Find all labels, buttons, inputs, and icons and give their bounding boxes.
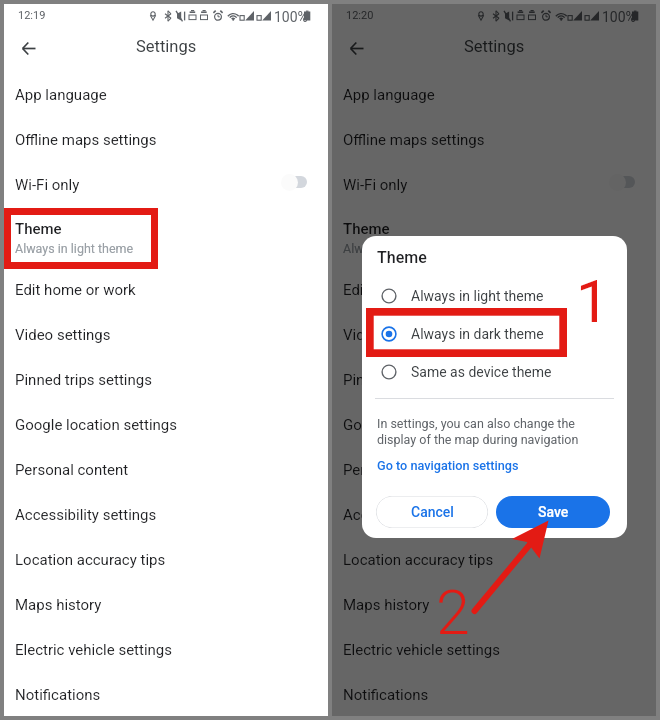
button[interactable]: Location accuracy tips [4, 537, 328, 582]
staticText: Theme [15, 220, 62, 238]
staticText: App language [343, 86, 435, 104]
staticText: Notifications [343, 686, 429, 704]
button[interactable]: Electric vehicle settings [332, 627, 656, 672]
staticText: Save [538, 504, 569, 520]
staticText: Offline maps settings [343, 131, 485, 149]
staticText: Always in light theme [343, 241, 462, 256]
button[interactable]: Notifications [4, 672, 328, 717]
staticText: Electric vehicle settings [343, 641, 501, 659]
button[interactable]: Always in light theme [362, 277, 627, 315]
staticText: Wi-Fi only [343, 176, 408, 194]
button[interactable]: App language [332, 72, 656, 117]
button[interactable]: Location accuracy tips [332, 537, 656, 582]
button[interactable]: Back [344, 35, 370, 61]
button[interactable]: Go to navigation settings [377, 458, 519, 473]
button[interactable]: Always in dark theme [362, 315, 627, 353]
button[interactable]: Back [16, 35, 42, 61]
staticText: Always in light theme [411, 288, 544, 304]
staticText: Pinned trips settings [15, 371, 152, 389]
button[interactable]: Maps history [4, 582, 328, 627]
staticText: Offline maps settings [15, 131, 157, 149]
button[interactable]: Theme [332, 207, 656, 267]
button[interactable]: Offline maps settings [332, 117, 656, 162]
staticText: Theme [343, 220, 390, 238]
button[interactable]: App language [4, 72, 328, 117]
button[interactable]: Accessibility settings [332, 492, 656, 537]
staticText: Accessibility settings [15, 506, 157, 524]
staticText: Always in light theme [15, 241, 134, 256]
button[interactable]: Video settings [4, 312, 328, 357]
staticText: Pinned trips settings [343, 371, 480, 389]
staticText: Edit home or work [15, 281, 136, 299]
staticText: 2 [436, 577, 470, 648]
button[interactable]: Offline maps settings [4, 117, 328, 162]
staticText: In settings, you can also change the [377, 416, 575, 431]
button[interactable]: Notifications [332, 672, 656, 717]
staticText: Electric vehicle settings [15, 641, 173, 659]
staticText: Cancel [411, 504, 454, 520]
staticText: 100% [602, 9, 636, 25]
button[interactable]: Cancel [376, 496, 488, 528]
button[interactable]: Wi-Fi only [4, 162, 328, 207]
staticText: Notifications [15, 686, 101, 704]
staticText: Google location settings [15, 416, 178, 434]
staticText: display of the map during navigation [377, 432, 579, 447]
staticText: Location accuracy tips [15, 551, 166, 569]
staticText: Personal content [343, 461, 457, 479]
staticText: Accessibility settings [343, 506, 485, 524]
staticText: Video settings [15, 326, 111, 344]
staticText: Maps history [343, 596, 430, 614]
button[interactable]: Theme [4, 207, 328, 267]
button[interactable]: Accessibility settings [4, 492, 328, 537]
staticText: Wi-Fi only [15, 176, 80, 194]
button[interactable]: Wi-Fi only [332, 162, 656, 207]
button[interactable]: Edit home or work [4, 267, 328, 312]
staticText: Same as device theme [411, 364, 552, 380]
button[interactable]: Pinned trips settings [332, 357, 656, 402]
staticText: 12:19 [18, 9, 46, 22]
staticText: 12:20 [346, 9, 374, 22]
staticText: 1 [576, 267, 610, 336]
button[interactable]: Pinned trips settings [4, 357, 328, 402]
staticText: Video settings [343, 326, 439, 344]
staticText: Google location settings [343, 416, 506, 434]
staticText: Personal content [15, 461, 129, 479]
staticText: Always in dark theme [411, 326, 544, 342]
staticText: Theme [377, 248, 427, 267]
button[interactable]: Personal content [4, 447, 328, 492]
staticText: 100% [274, 9, 308, 25]
button[interactable]: Google location settings [332, 402, 656, 447]
staticText: Settings [136, 37, 197, 56]
staticText: Settings [464, 37, 525, 56]
staticText: App language [15, 86, 107, 104]
button[interactable]: Same as device theme [362, 353, 627, 391]
button[interactable]: Google location settings [4, 402, 328, 447]
staticText: Go to navigation settings [377, 458, 519, 473]
button[interactable]: Electric vehicle settings [4, 627, 328, 672]
button[interactable]: Video settings [332, 312, 656, 357]
button[interactable]: Personal content [332, 447, 656, 492]
staticText: Location accuracy tips [343, 551, 494, 569]
staticText: Edit home or work [343, 281, 464, 299]
button[interactable]: Save [496, 496, 610, 528]
staticText: Maps history [15, 596, 102, 614]
button[interactable]: Edit home or work [332, 267, 656, 312]
button[interactable]: Maps history [332, 582, 656, 627]
